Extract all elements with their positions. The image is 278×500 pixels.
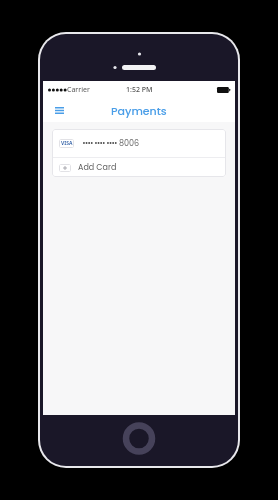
staticText: 8006 [119, 138, 140, 149]
staticText: Add Card [78, 162, 117, 173]
staticText: VISA [61, 140, 73, 147]
staticText: Carrier [67, 85, 90, 95]
button[interactable]: Menu [51, 102, 67, 118]
button[interactable]: VISA [52, 129, 226, 157]
staticText: 1:52 PM [126, 85, 153, 95]
staticText: Payments [111, 103, 167, 118]
button[interactable]: Add Card [52, 158, 226, 177]
